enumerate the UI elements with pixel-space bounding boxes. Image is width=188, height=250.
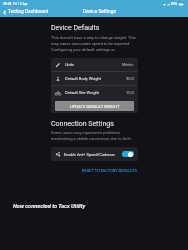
button[interactable]: UPDATE DEFAULT WEIGHT	[55, 101, 134, 111]
staticText: Metric	[122, 62, 134, 67]
staticText: Connection Settings	[51, 120, 114, 128]
button[interactable]: RESET TO FACTORY DEFAULTS	[81, 166, 138, 175]
button[interactable]: Enable Ant+ Speed/Cadence toggle	[122, 151, 134, 157]
staticText: Now connected to Tacx Utility	[13, 203, 86, 210]
staticText: Enable Ant+ Speed/Cadence	[64, 152, 115, 157]
staticText: Device Defaults	[51, 24, 100, 32]
button[interactable]: Testing Dashboard	[0, 8, 52, 16]
button[interactable]: Default Body Weight	[51, 72, 138, 85]
staticText: 10.0	[126, 90, 134, 95]
staticText: Device Settings	[83, 9, 116, 15]
button[interactable]: Default Site Weight	[51, 86, 138, 99]
staticText: Default Site Weight	[65, 90, 99, 95]
staticText: Testing Dashboard	[8, 9, 49, 15]
button[interactable]: Units	[51, 58, 138, 71]
staticText: 90.0	[126, 76, 134, 81]
staticText: This doesn't have a way to change weight…	[51, 35, 138, 52]
staticText: Default Body Weight	[65, 76, 102, 81]
staticText: 85%	[171, 2, 178, 6]
staticText: Units	[65, 62, 75, 67]
button[interactable]: Enable Ant+ Speed/Cadence	[51, 147, 138, 161]
staticText: 08:04 Fri 15 Apr	[3, 2, 28, 6]
staticText: Some users may experience problems maint…	[51, 130, 138, 141]
staticText: UPDATE DEFAULT WEIGHT	[70, 104, 120, 109]
staticText: RESET TO FACTORY DEFAULTS	[82, 168, 137, 173]
